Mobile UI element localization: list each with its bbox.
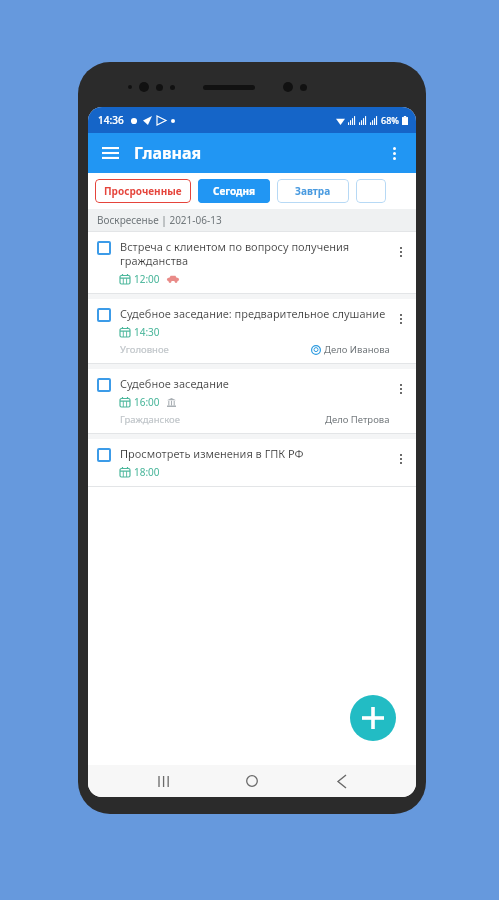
- button[interactable]: Меню: [94, 137, 126, 169]
- button[interactable]: Отметить: [88, 299, 416, 363]
- staticText: 68%: [381, 114, 399, 126]
- button[interactable]: Отметить: [97, 378, 111, 392]
- staticText: 12:00: [134, 272, 160, 286]
- button[interactable]: Меню задачи: [390, 308, 412, 330]
- staticText: Сегодня: [213, 184, 256, 198]
- button[interactable]: Меню задачи: [390, 241, 412, 263]
- button[interactable]: Домой: [237, 766, 267, 796]
- staticText: Главная: [134, 142, 202, 164]
- button[interactable]: Добавить: [350, 695, 396, 741]
- staticText: 14:36: [98, 113, 124, 127]
- button[interactable]: Ещё: [378, 137, 410, 169]
- button[interactable]: Просроченные: [95, 179, 191, 203]
- button[interactable]: Отметить: [97, 308, 111, 322]
- button[interactable]: Отметить: [97, 241, 111, 255]
- staticText: Дело Иванова: [324, 343, 390, 356]
- staticText: Просмотреть изменения в ГПК РФ: [120, 446, 304, 461]
- staticText: Просроченные: [104, 184, 182, 198]
- staticText: 18:00: [134, 465, 160, 479]
- staticText: 16:00: [134, 395, 160, 409]
- staticText: Судебное заседание: предварительное слуш…: [120, 306, 386, 321]
- button[interactable]: Отметить: [97, 448, 111, 462]
- staticText: Гражданское: [120, 413, 180, 426]
- button[interactable]: [356, 179, 386, 203]
- button[interactable]: Меню задачи: [390, 378, 412, 400]
- staticText: Завтра: [295, 184, 331, 198]
- button[interactable]: Отметить: [88, 439, 416, 486]
- button[interactable]: Назад: [327, 766, 357, 796]
- button[interactable]: Отметить: [88, 232, 416, 293]
- staticText: Воскресенье | 2021-06-13: [97, 213, 222, 227]
- staticText: Уголовное: [120, 343, 169, 356]
- button[interactable]: Сегодня: [198, 179, 270, 203]
- staticText: 14:30: [134, 325, 160, 339]
- staticText: Судебное заседание: [120, 376, 229, 391]
- staticText: Дело Петрова: [325, 413, 390, 426]
- staticText: Встреча с клиентом по вопросу получения …: [120, 239, 390, 268]
- button[interactable]: Меню задачи: [390, 448, 412, 470]
- button[interactable]: Недавние: [148, 766, 178, 796]
- button[interactable]: Завтра: [277, 179, 349, 203]
- button[interactable]: Отметить: [88, 369, 416, 433]
